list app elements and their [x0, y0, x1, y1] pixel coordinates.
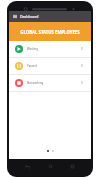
button[interactable]: Recent apps	[69, 163, 76, 170]
staticText: Dashboard	[20, 14, 39, 19]
button[interactable]: Not working	[9, 75, 91, 92]
staticText: 0	[81, 47, 83, 51]
staticText: GLOBAL STATUS EMPLOYEES	[20, 29, 80, 35]
button[interactable]: Home	[47, 163, 54, 170]
button[interactable]: Paused	[9, 58, 91, 75]
button[interactable]: Back	[24, 163, 31, 170]
button[interactable]: Open navigation menu	[11, 13, 18, 20]
button[interactable]: Working	[9, 41, 91, 58]
staticText: 0	[81, 81, 83, 85]
staticText: Not working	[27, 81, 81, 85]
staticText: Working	[27, 47, 81, 51]
staticText: 0	[81, 64, 83, 68]
staticText: Paused	[27, 64, 81, 68]
button[interactable]: Open navigation menu	[9, 11, 91, 22]
